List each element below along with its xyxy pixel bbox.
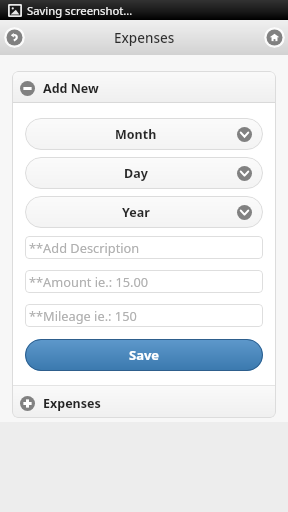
staticText: Expenses bbox=[114, 29, 175, 47]
staticText: Add New bbox=[43, 80, 99, 97]
button[interactable]: Expenses bbox=[12, 386, 276, 418]
button[interactable]: Day bbox=[25, 157, 263, 189]
staticText: Save bbox=[129, 346, 160, 364]
button[interactable]: Year bbox=[25, 196, 263, 228]
button[interactable]: Add New bbox=[12, 71, 276, 102]
button[interactable]: Save bbox=[25, 339, 263, 371]
staticText: **Mileage ie.: 150 bbox=[29, 307, 137, 324]
button[interactable]: Back bbox=[4, 27, 25, 48]
button[interactable]: **Add Description bbox=[25, 236, 263, 259]
button[interactable]: Month bbox=[25, 118, 263, 150]
button[interactable]: **Mileage ie.: 150 bbox=[25, 304, 263, 327]
staticText: **Amount ie.: 15.00 bbox=[29, 273, 149, 290]
staticText: Month bbox=[115, 126, 157, 143]
staticText: Saving screenshot… bbox=[27, 3, 133, 18]
button[interactable]: **Amount ie.: 15.00 bbox=[25, 270, 263, 293]
staticText: **Add Description bbox=[29, 239, 140, 256]
staticText: Expenses bbox=[43, 395, 101, 412]
staticText: Day bbox=[124, 165, 148, 182]
staticText: Year bbox=[122, 204, 150, 221]
button[interactable]: Home bbox=[264, 27, 285, 48]
